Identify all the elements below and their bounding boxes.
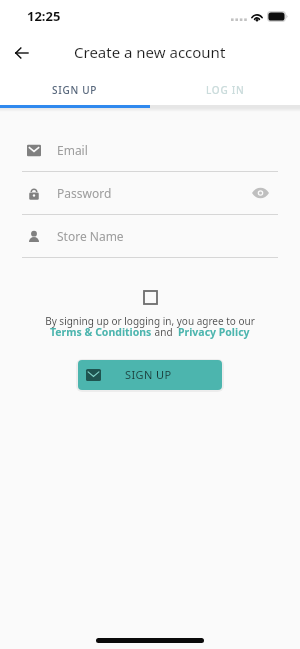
button[interactable]: Back — [6, 38, 36, 68]
button[interactable]: Show password — [249, 182, 271, 204]
staticText: Email — [57, 142, 88, 158]
button[interactable]: Store Name — [22, 215, 278, 257]
staticText: 12:25 — [27, 7, 61, 25]
button[interactable]: Terms & Conditions — [50, 325, 152, 339]
staticText: By signing up or logging in, you agree t… — [45, 314, 255, 328]
staticText: SIGN UP — [52, 83, 98, 97]
button[interactable]: Privacy Policy — [178, 325, 250, 339]
staticText: Privacy Policy — [178, 325, 250, 339]
staticText: SIGN UP — [125, 367, 172, 382]
button[interactable]: Email — [22, 129, 278, 171]
button[interactable]: SIGN UP — [0, 74, 150, 105]
staticText: Password — [57, 185, 112, 201]
button[interactable]: Accept terms and conditions — [138, 285, 162, 309]
staticText: and — [152, 325, 178, 339]
button[interactable]: LOG IN — [150, 74, 300, 105]
staticText: Terms & Conditions — [50, 325, 152, 339]
button[interactable]: SIGN UP — [78, 360, 222, 390]
button[interactable]: Password — [22, 172, 278, 214]
staticText: Create a new account — [74, 42, 226, 62]
staticText: Store Name — [57, 228, 124, 244]
staticText: LOG IN — [206, 83, 245, 97]
